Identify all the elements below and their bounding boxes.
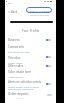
staticText: Alerts on calendar events: [8, 80, 42, 84]
staticText: Lorem ipsum dolor sit amet consectetur a…: [8, 85, 40, 91]
button[interactable]: Toggle: [47, 94, 52, 96]
staticText: Lorem ipsum: [8, 75, 23, 78]
button[interactable]: Contact info: [8, 45, 30, 53]
button[interactable]: Toggle: [46, 56, 51, 58]
staticText: Online deposits: [8, 92, 29, 96]
staticText: Lorem ipsum: [8, 61, 23, 64]
button[interactable]: Tailor intake form: [8, 70, 32, 78]
button[interactable]: Business: [8, 38, 20, 42]
staticText: Your Profile: [22, 29, 40, 33]
staticText: Business: [8, 38, 20, 42]
button[interactable]: Toggle: [46, 83, 51, 85]
staticText: 9:41: [8, 1, 13, 4]
staticText: Lorem: [17, 97, 24, 100]
button[interactable]: Online deposits: [8, 92, 29, 96]
button[interactable]: Title alias: [8, 56, 23, 64]
staticText: Contact info: [8, 45, 24, 49]
staticText: Title alias: [8, 56, 21, 60]
button[interactable]: Manage in 1Password: [26, 7, 52, 13]
button[interactable]: Back: [7, 9, 19, 15]
staticText: Manage in 1Password: [26, 9, 52, 12]
staticText: Secure in Vault app: [30, 14, 49, 17]
button[interactable]: Toggle: [46, 65, 51, 67]
button[interactable]: Offer codes: [8, 64, 24, 68]
button[interactable]: Toggle: [46, 39, 51, 41]
staticText: Tailor intake form: [8, 70, 32, 74]
staticText: Offer codes: [8, 64, 24, 68]
staticText: Back: [11, 10, 18, 14]
staticText: Edit details on Folio: [8, 50, 30, 53]
button[interactable]: Alerts on calendar events: [8, 80, 42, 91]
